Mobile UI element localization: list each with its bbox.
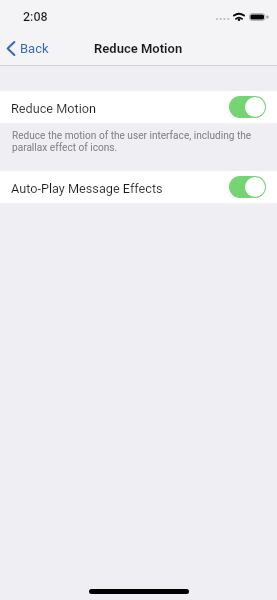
button[interactable]: Toggle switch, on xyxy=(229,96,266,118)
staticText: Reduce Motion xyxy=(94,41,183,56)
button[interactable]: Auto-Play Message Effects xyxy=(0,171,277,203)
staticText: 2:08 xyxy=(23,9,48,24)
other: Back xyxy=(7,42,15,55)
staticText: Back xyxy=(20,41,49,56)
button[interactable]: Reduce Motion xyxy=(0,91,277,123)
staticText: Reduce the motion of the user interface,… xyxy=(12,130,258,153)
button[interactable]: Toggle switch, on xyxy=(229,176,266,198)
button[interactable]: Back xyxy=(0,30,57,67)
staticText: Reduce Motion xyxy=(11,101,97,116)
staticText: Auto-Play Message Effects xyxy=(11,181,163,196)
